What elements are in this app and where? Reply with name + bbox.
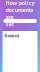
staticText: How policy documents are set: [5, 0, 34, 28]
staticText: Related: [4, 33, 19, 38]
